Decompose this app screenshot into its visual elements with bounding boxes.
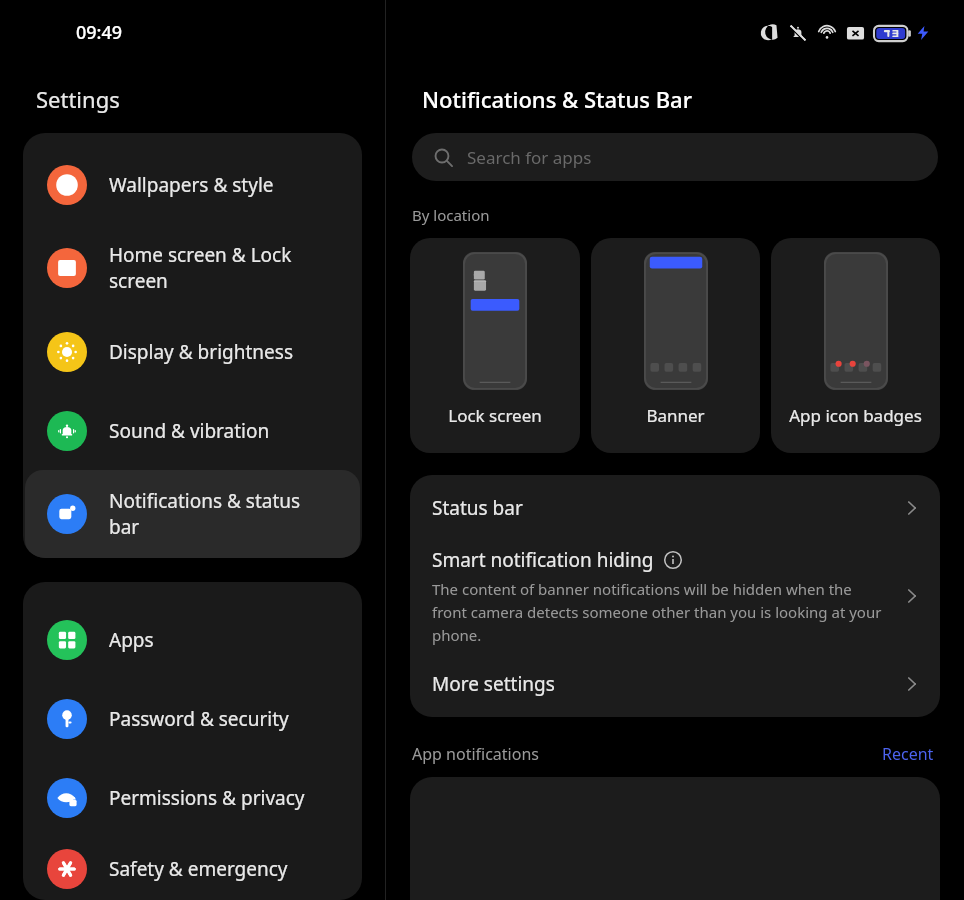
- button[interactable]: Password & security: [25, 679, 360, 758]
- button[interactable]: Recent: [878, 741, 938, 767]
- button[interactable]: Lock screen: [410, 238, 580, 453]
- staticText: Safety & emergency: [109, 856, 288, 882]
- staticText: Home screen & Lock screen: [109, 242, 292, 294]
- staticText: Apps: [109, 627, 154, 653]
- staticText: Notifications & Status Bar: [422, 84, 693, 114]
- staticText: Lock screen: [448, 404, 542, 427]
- staticText: Notifications & status bar: [109, 488, 301, 540]
- staticText: Smart notification hiding: [432, 547, 654, 573]
- button[interactable]: Display & brightness: [25, 312, 360, 391]
- staticText: App notifications: [412, 743, 539, 765]
- staticText: Banner: [646, 404, 705, 427]
- staticText: Status bar: [432, 495, 523, 521]
- button[interactable]: Permissions & privacy: [25, 758, 360, 837]
- staticText: More settings: [432, 671, 555, 697]
- staticText: Settings: [36, 84, 120, 114]
- staticText: Recent: [882, 743, 934, 765]
- button[interactable]: Notifications & status bar: [25, 470, 360, 558]
- button[interactable]: Safety & emergency: [25, 837, 360, 900]
- button[interactable]: Wallpapers & style: [25, 145, 360, 224]
- staticText: Wallpapers & style: [109, 172, 274, 198]
- button[interactable]: Smart notification hiding: [410, 527, 940, 651]
- staticText: 09:49: [76, 20, 123, 45]
- button[interactable]: More settings: [410, 651, 940, 703]
- staticText: Permissions & privacy: [109, 785, 305, 811]
- staticText: By location: [412, 205, 490, 225]
- button[interactable]: Home screen & Lock screen: [25, 224, 360, 312]
- staticText: Search for apps: [467, 146, 592, 169]
- button[interactable]: Sound & vibration: [25, 391, 360, 470]
- staticText: Display & brightness: [109, 339, 293, 365]
- button[interactable]: App icon badges: [771, 238, 940, 453]
- button[interactable]: Apps: [25, 600, 360, 679]
- button[interactable]: Banner: [591, 238, 760, 453]
- button[interactable]: Search for apps: [412, 133, 938, 181]
- staticText: App icon badges: [789, 404, 922, 427]
- staticText: Password & security: [109, 706, 289, 732]
- staticText: The content of banner notifications will…: [432, 579, 890, 645]
- button[interactable]: Status bar: [410, 475, 940, 527]
- staticText: Sound & vibration: [109, 418, 270, 444]
